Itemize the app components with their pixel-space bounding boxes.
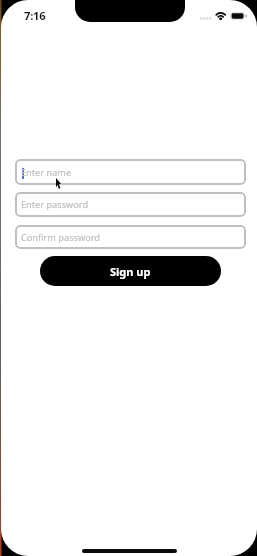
- button[interactable]: Enter name: [15, 159, 246, 185]
- button[interactable]: Enter password: [15, 192, 246, 217]
- staticText: Enter name: [21, 166, 72, 179]
- button[interactable]: Confirm password: [15, 225, 246, 249]
- button[interactable]: Sign up: [40, 256, 221, 286]
- staticText: Sign up: [110, 264, 151, 279]
- staticText: Enter password: [21, 198, 89, 211]
- staticText: 7:16: [24, 8, 46, 23]
- staticText: Confirm password: [21, 231, 100, 244]
